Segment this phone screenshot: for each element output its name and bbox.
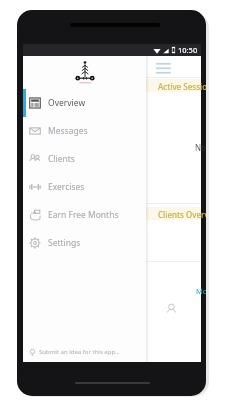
staticText: Messages — [48, 125, 88, 137]
staticText: Overview — [48, 97, 86, 109]
staticText: Active Sessions — [158, 81, 206, 92]
staticText: Earn Free Months — [48, 209, 119, 221]
button[interactable]: Overview — [23, 89, 146, 117]
button[interactable]: Exercises — [23, 173, 146, 201]
button[interactable]: Open navigation menu — [155, 60, 172, 74]
button[interactable]: Submit an idea for this app... — [23, 342, 146, 362]
staticText: Submit an idea for this app... — [39, 348, 120, 356]
staticText: No active sessions — [195, 142, 206, 153]
staticText: 10:50 — [178, 45, 198, 55]
button[interactable]: Earn Free Months — [23, 201, 146, 229]
button[interactable]: Settings — [23, 229, 146, 257]
staticText: More — [196, 286, 206, 296]
staticText: Settings — [48, 237, 81, 249]
staticText: Exercises — [48, 181, 85, 193]
staticText: Clients — [48, 153, 75, 165]
staticText: Clients Overview — [158, 209, 206, 220]
button[interactable]: Messages — [23, 117, 146, 145]
button[interactable]: Clients — [23, 145, 146, 173]
